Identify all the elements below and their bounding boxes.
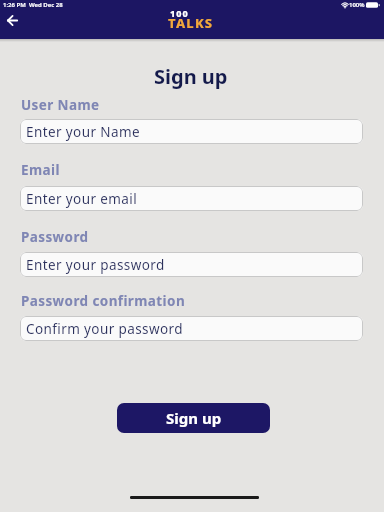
staticText: TALKS (168, 14, 214, 32)
staticText: 100 (170, 7, 189, 19)
button[interactable]: Confirm your password (20, 316, 363, 341)
button[interactable]: Sign up (117, 403, 270, 433)
staticText: Enter your email (26, 190, 138, 208)
staticText: 1:26 PM Wed Dec 28 (3, 1, 63, 9)
staticText: Confirm your password (26, 320, 183, 338)
button[interactable]: Enter your Name (20, 119, 363, 144)
staticText: 100% (349, 1, 365, 9)
staticText: Enter your password (26, 256, 165, 274)
staticText: Sign up (166, 408, 222, 428)
staticText: Email (21, 161, 60, 179)
button[interactable] (2, 10, 22, 30)
staticText: Password confirmation (21, 292, 186, 310)
button[interactable]: Enter your email (20, 186, 363, 211)
staticText: Enter your Name (26, 123, 140, 141)
staticText: User Name (21, 96, 100, 114)
button[interactable]: Enter your password (20, 252, 363, 277)
staticText: Password (21, 228, 89, 246)
staticText: Sign up (154, 63, 228, 90)
